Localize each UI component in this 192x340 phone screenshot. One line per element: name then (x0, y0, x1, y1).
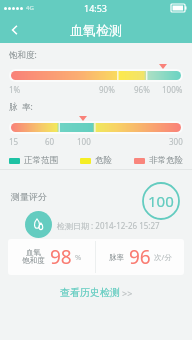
button[interactable]: Back (0, 16, 30, 43)
staticText: 脉 率: (9, 101, 33, 113)
staticText: % (75, 252, 82, 262)
staticText: >> (122, 287, 133, 299)
staticText: 100 (77, 136, 91, 147)
staticText: 血氧 饱和度 (22, 248, 45, 266)
staticText: 脉率 (109, 253, 124, 262)
button[interactable]: 血氧 饱和度 (8, 239, 95, 275)
staticText: 14:53 (84, 2, 108, 14)
button[interactable]: 查看历史检测 (0, 279, 192, 305)
staticText: 测量评分 (11, 191, 47, 202)
staticText: 300 (169, 136, 183, 147)
staticText: 4G (26, 4, 34, 12)
staticText: 100 (148, 191, 174, 211)
staticText: 60 (45, 136, 55, 147)
staticText: 96 (129, 244, 151, 270)
staticText: 96% (134, 84, 150, 95)
button[interactable]: 脉率 (96, 239, 184, 275)
staticText: 1% (9, 84, 21, 95)
staticText: 98 (50, 244, 72, 270)
staticText: 100% (162, 84, 183, 95)
staticText: 查看历史检测 (60, 286, 120, 299)
staticText: 饱和度: (9, 49, 37, 61)
staticText: 90% (99, 84, 115, 95)
staticText: 15 (9, 136, 19, 147)
staticText: 非常危险 (149, 155, 183, 166)
staticText: 检测日期 : 2014-12-26 15:27 (57, 220, 160, 231)
staticText: 正常范围 (24, 155, 58, 166)
staticText: 危险 (95, 155, 112, 166)
staticText: 血氧检测 (70, 22, 122, 38)
staticText: 次/分 (154, 252, 172, 262)
